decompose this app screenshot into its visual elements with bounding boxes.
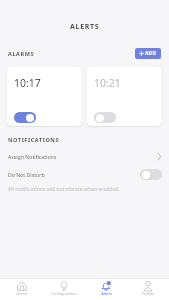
staticText: ALARMS [8,50,35,57]
staticText: Do Not Disturb [8,171,45,178]
staticText: 10:21 [94,76,121,90]
staticText: Configuration [51,291,77,296]
button[interactable]: ADD [135,48,161,59]
button[interactable]: Do Not Disturb toggle [140,169,162,180]
staticText: 10:17 [14,76,41,90]
staticText: Profile [142,291,154,296]
staticText: Alerts [101,291,112,296]
staticText: NOTIFICATIONS [8,136,60,143]
button[interactable]: Configuration [43,279,85,300]
staticText: ALERTS [70,22,100,32]
staticText: Home [16,291,28,296]
button[interactable]: Assign Notifications [0,150,169,162]
button[interactable]: Alerts [85,279,127,300]
button[interactable]: Home [0,279,43,300]
staticText: All notifications will not vibrate when … [8,185,120,192]
button[interactable]: 10:21 [87,67,162,126]
button[interactable]: 10:17 [7,67,82,126]
staticText: ADD [145,50,157,57]
button[interactable]: Profile [127,279,169,300]
staticText: Assign Notifications [8,153,57,160]
